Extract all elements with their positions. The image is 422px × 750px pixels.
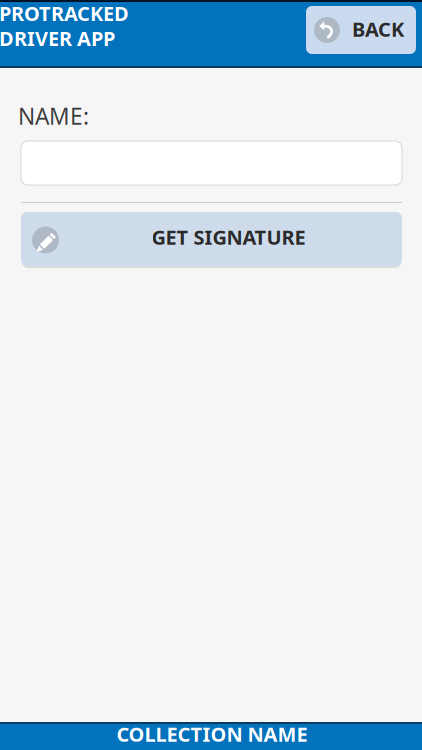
button[interactable]: GET SIGNATURE xyxy=(21,212,402,266)
staticText: NAME: xyxy=(18,101,89,131)
staticText: GET SIGNATURE xyxy=(151,224,305,250)
staticText: DRIVER APP xyxy=(0,25,115,52)
staticText: COLLECTION NAME xyxy=(116,721,307,747)
button[interactable]: Name xyxy=(21,141,402,185)
staticText: BACK xyxy=(352,16,404,42)
staticText: PROTRACKED xyxy=(0,0,129,27)
button[interactable]: BACK xyxy=(306,6,416,54)
